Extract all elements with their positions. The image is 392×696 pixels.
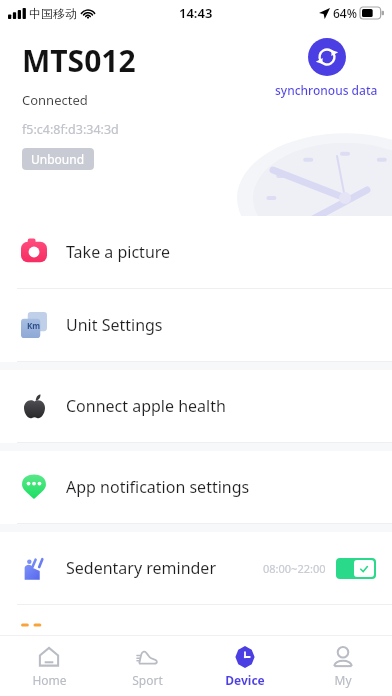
staticText: synchronous data (275, 82, 378, 98)
staticText: 中国移动 (29, 6, 77, 21)
button[interactable]: Home (0, 636, 98, 696)
staticText: Unbound (31, 151, 85, 167)
button[interactable]: Sedentary reminder toggle (336, 558, 376, 579)
staticText: f5:c4:8f:d3:34:3d (22, 121, 119, 138)
staticText: Home (32, 672, 67, 688)
staticText: App notification settings (66, 476, 250, 498)
staticText: Connect apple health (66, 395, 226, 417)
button[interactable]: My (294, 636, 392, 696)
button[interactable]: Synchronous data (275, 38, 378, 98)
staticText: Device (225, 672, 265, 688)
staticText: Km (27, 320, 41, 331)
staticText: MTS012 (22, 40, 136, 81)
button[interactable]: Device (196, 636, 294, 696)
button[interactable]: Connect apple health (0, 370, 392, 442)
staticText: 08:00~22:00 (263, 561, 326, 576)
button[interactable]: Km (0, 289, 392, 361)
staticText: 64% (333, 5, 357, 21)
button[interactable]: Sedentary reminder (0, 532, 392, 604)
staticText: Take a picture (66, 241, 171, 263)
button[interactable]: Sport (98, 636, 196, 696)
button[interactable]: App notification settings (0, 451, 392, 523)
staticText: Unit Settings (66, 314, 163, 336)
button[interactable]: Unbound (22, 148, 94, 170)
button[interactable]: Take a picture (0, 216, 392, 288)
staticText: 14:43 (179, 4, 213, 22)
staticText: Sedentary reminder (66, 557, 217, 579)
staticText: My (334, 672, 352, 688)
staticText: Connected (22, 91, 88, 109)
staticText: Sport (132, 672, 163, 688)
